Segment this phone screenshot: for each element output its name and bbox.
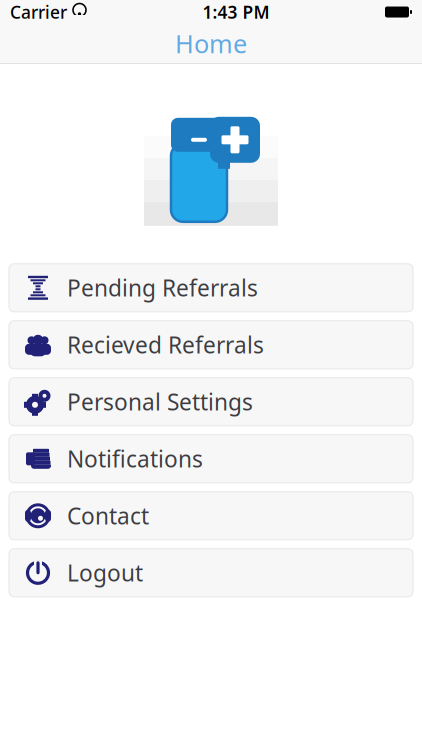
staticText: Personal Settings bbox=[67, 387, 253, 417]
staticText: Notifications bbox=[67, 444, 203, 474]
staticText: Contact bbox=[67, 501, 149, 531]
staticText: Logout bbox=[67, 558, 143, 588]
staticText: 1:43 PM bbox=[202, 0, 269, 23]
staticText: Recieved Referrals bbox=[67, 330, 264, 360]
button[interactable]: Contact bbox=[9, 492, 413, 540]
staticText: Carrier bbox=[10, 0, 67, 23]
staticText: Pending Referrals bbox=[67, 273, 258, 303]
button[interactable]: Personal Settings bbox=[9, 378, 413, 426]
button[interactable]: Pending Referrals bbox=[9, 264, 413, 312]
button[interactable]: Logout bbox=[9, 549, 413, 597]
button[interactable]: Notifications bbox=[9, 435, 413, 483]
button[interactable]: Recieved Referrals bbox=[9, 321, 413, 369]
staticText: Home bbox=[175, 27, 247, 60]
